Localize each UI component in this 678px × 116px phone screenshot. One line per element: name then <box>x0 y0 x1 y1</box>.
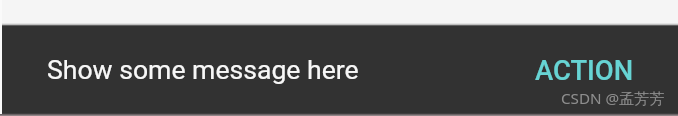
button[interactable]: ACTION <box>527 55 642 87</box>
staticText: ACTION <box>535 55 634 87</box>
staticText: Show some message here <box>47 54 359 85</box>
staticText: CSDN @孟芳芳 <box>561 88 665 109</box>
